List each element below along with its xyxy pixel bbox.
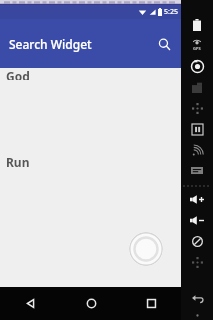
button[interactable]: GPS: [181, 35, 213, 56]
button[interactable]: Recent apps: [121, 287, 181, 320]
button[interactable]: Battery: [181, 14, 213, 35]
button[interactable]: Add: [129, 232, 163, 266]
button[interactable]: Back: [187, 288, 207, 308]
staticText: Run: [6, 154, 30, 170]
button[interactable]: Home: [61, 287, 121, 320]
button[interactable]: Phone: [181, 77, 213, 98]
button[interactable]: Volume down: [181, 210, 213, 231]
button[interactable]: Run: [0, 154, 181, 170]
button[interactable]: Directional pad: [181, 98, 213, 119]
button[interactable]: Back: [0, 287, 61, 320]
staticText: GPS: [193, 46, 201, 51]
button[interactable]: Cellular: [181, 140, 213, 161]
button[interactable]: Camera: [181, 56, 213, 77]
button[interactable]: Rotate: [181, 231, 213, 252]
button[interactable]: God: [0, 68, 181, 80]
button[interactable]: Directional pad: [181, 252, 213, 273]
staticText: 5:25: [164, 7, 178, 17]
staticText: God: [6, 68, 30, 80]
button[interactable]: Search: [153, 33, 175, 55]
button[interactable]: Volume up: [181, 189, 213, 210]
staticText: Search Widget: [9, 36, 92, 52]
button[interactable]: Fingerprint: [181, 119, 213, 140]
button[interactable]: Messages: [181, 161, 213, 182]
